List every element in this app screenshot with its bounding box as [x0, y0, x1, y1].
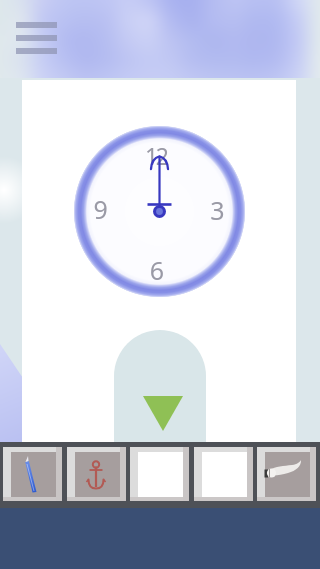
button[interactable]: Pen	[3, 447, 62, 501]
button[interactable]: Anchor	[67, 447, 126, 501]
button[interactable]: Empty slot	[194, 447, 253, 501]
button[interactable]: Empty slot	[130, 447, 189, 501]
button[interactable]: Menu	[14, 21, 58, 56]
button[interactable]: Hook	[257, 447, 316, 501]
